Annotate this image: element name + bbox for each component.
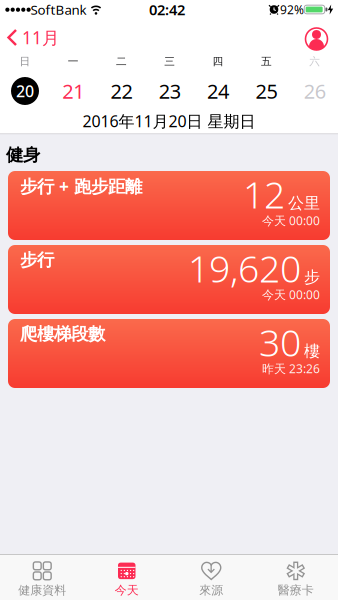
staticText: 19,620 bbox=[188, 243, 301, 293]
staticText: 日 bbox=[19, 55, 30, 68]
staticText: 四 bbox=[213, 55, 224, 68]
button[interactable]: 步行 bbox=[8, 245, 330, 314]
staticText: 步行 + 跑步距離 bbox=[20, 174, 142, 197]
staticText: 22 bbox=[111, 78, 133, 104]
staticText: 昨天 23:26 bbox=[262, 360, 320, 376]
button[interactable]: 來源 bbox=[169, 557, 253, 600]
staticText: 醫療卡 bbox=[278, 583, 314, 598]
button[interactable]: 21 bbox=[56, 75, 90, 107]
staticText: 2016年11月20日 星期日 bbox=[82, 110, 255, 132]
staticText: SoftBank bbox=[30, 1, 86, 18]
staticText: 26 bbox=[304, 78, 326, 104]
button[interactable]: 健康資料與隱私 bbox=[305, 27, 328, 50]
staticText: 五 bbox=[261, 55, 272, 68]
staticText: 健身 bbox=[6, 144, 40, 166]
button[interactable]: 醫療卡 bbox=[254, 557, 338, 600]
staticText: 21 bbox=[62, 78, 84, 104]
staticText: 25 bbox=[255, 78, 277, 104]
staticText: 02:42 bbox=[149, 0, 185, 19]
staticText: 20 bbox=[16, 80, 34, 102]
button[interactable]: 今天 bbox=[85, 557, 169, 600]
staticText: 30 bbox=[259, 317, 301, 367]
staticText: 12 bbox=[243, 169, 285, 219]
staticText: 公里 bbox=[288, 193, 320, 213]
button[interactable]: 20 bbox=[8, 75, 42, 107]
button[interactable]: 健康資料 bbox=[0, 557, 84, 600]
staticText: 來源 bbox=[199, 583, 223, 598]
staticText: 步 bbox=[304, 267, 320, 287]
staticText: 爬樓梯段數 bbox=[20, 323, 105, 345]
staticText: 三 bbox=[164, 55, 175, 68]
staticText: 六 bbox=[309, 55, 320, 68]
staticText: 今天 00:00 bbox=[262, 212, 320, 228]
button[interactable]: 24 bbox=[201, 75, 235, 107]
staticText: 今天 bbox=[115, 583, 139, 598]
button[interactable]: 22 bbox=[105, 75, 139, 107]
button[interactable]: 返回 11月 bbox=[0, 26, 59, 49]
button[interactable]: 步行 + 跑步距離 bbox=[8, 171, 330, 240]
staticText: 23 bbox=[159, 78, 181, 104]
staticText: 二 bbox=[116, 55, 127, 68]
staticText: 一 bbox=[68, 55, 79, 68]
staticText: 11月 bbox=[22, 26, 59, 49]
button[interactable]: 25 bbox=[249, 75, 283, 107]
staticText: 24 bbox=[207, 78, 229, 104]
button[interactable]: 26 bbox=[298, 75, 332, 107]
button[interactable]: 23 bbox=[153, 75, 187, 107]
button[interactable]: 爬樓梯段數 bbox=[8, 319, 330, 388]
staticText: 健康資料 bbox=[18, 583, 66, 598]
staticText: 92% bbox=[280, 1, 304, 17]
staticText: 今天 00:00 bbox=[262, 286, 320, 302]
staticText: 步行 bbox=[20, 249, 54, 271]
staticText: 樓 bbox=[304, 341, 320, 361]
